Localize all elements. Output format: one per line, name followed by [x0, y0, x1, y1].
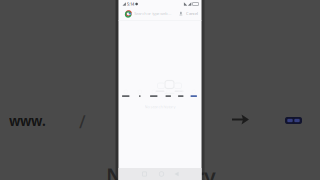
staticText: / — [79, 110, 86, 133]
button[interactable] — [190, 90, 197, 100]
button[interactable] — [165, 90, 171, 100]
button[interactable] — [150, 90, 157, 100]
staticText: No search history — [144, 104, 175, 109]
button[interactable]: Back — [170, 168, 182, 180]
button[interactable] — [122, 90, 129, 100]
staticText: 5:14 — [127, 1, 134, 7]
button[interactable]: Recent apps — [138, 168, 150, 180]
staticText: Search or type web address — [134, 11, 171, 16]
staticText: No history — [106, 162, 216, 180]
button[interactable] — [178, 90, 183, 100]
button[interactable] — [139, 90, 141, 100]
staticText: Cancel — [186, 11, 198, 16]
staticText: www. — [9, 112, 46, 130]
